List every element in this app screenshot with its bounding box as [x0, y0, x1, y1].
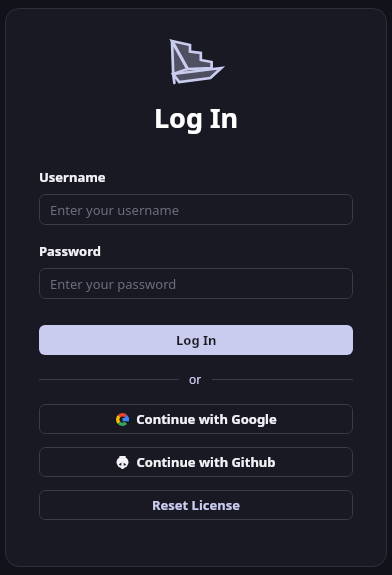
- staticText: Enter your username: [50, 201, 180, 219]
- button[interactable]: Enter your password: [39, 268, 353, 299]
- other: Google: [116, 413, 129, 426]
- staticText: Reset License: [152, 496, 240, 514]
- button[interactable]: Enter your username: [39, 194, 353, 225]
- staticText: Enter your password: [50, 275, 177, 293]
- other: GitHub: [116, 456, 129, 469]
- staticText: or: [189, 371, 202, 387]
- staticText: Log In: [154, 99, 239, 136]
- button[interactable]: Reset License: [39, 490, 353, 520]
- button[interactable]: Google: [39, 404, 353, 434]
- staticText: Continue with Github: [136, 453, 276, 471]
- button[interactable]: Log In: [39, 325, 353, 355]
- staticText: Username: [39, 168, 106, 186]
- staticText: Log In: [176, 331, 217, 349]
- staticText: Password: [39, 242, 101, 260]
- button[interactable]: GitHub: [39, 447, 353, 477]
- staticText: Continue with Google: [136, 410, 277, 428]
